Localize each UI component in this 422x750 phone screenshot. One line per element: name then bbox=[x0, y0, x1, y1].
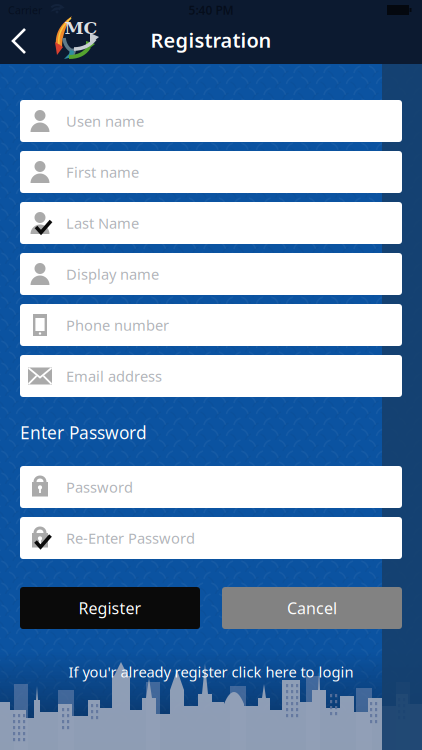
staticText: Cancel bbox=[287, 597, 337, 619]
button[interactable]: Cancel bbox=[222, 587, 402, 629]
staticText: Phone number bbox=[66, 315, 169, 335]
staticText: Display name bbox=[66, 264, 159, 284]
staticText: Register bbox=[78, 597, 141, 619]
button[interactable]: Phone number bbox=[20, 304, 402, 346]
button[interactable]: Last Name bbox=[20, 202, 402, 244]
button[interactable]: If you'r already register click here to … bbox=[68, 662, 353, 681]
staticText: Password bbox=[66, 477, 133, 497]
button[interactable]: First name bbox=[20, 151, 402, 193]
button[interactable]: Password bbox=[20, 466, 402, 508]
staticText: Enter Password bbox=[20, 421, 147, 444]
staticText: Email address bbox=[66, 366, 162, 386]
staticText: If you'r already register click here to … bbox=[68, 662, 353, 681]
staticText: Carrier bbox=[8, 3, 42, 17]
staticText: Usen name bbox=[66, 111, 144, 131]
button[interactable]: Display name bbox=[20, 253, 402, 295]
staticText: Registration bbox=[150, 27, 271, 53]
staticText: MC bbox=[64, 18, 97, 38]
button[interactable]: Usen name bbox=[20, 100, 402, 142]
staticText: Last Name bbox=[66, 213, 139, 233]
staticText: First name bbox=[66, 162, 139, 182]
staticText: 5:40 PM bbox=[188, 2, 233, 18]
button[interactable]: Register bbox=[20, 587, 200, 629]
button[interactable]: Re-Enter Password bbox=[20, 517, 402, 559]
staticText: Re-Enter Password bbox=[66, 528, 195, 548]
button[interactable]: Email address bbox=[20, 355, 402, 397]
button[interactable]: Back bbox=[10, 24, 34, 58]
